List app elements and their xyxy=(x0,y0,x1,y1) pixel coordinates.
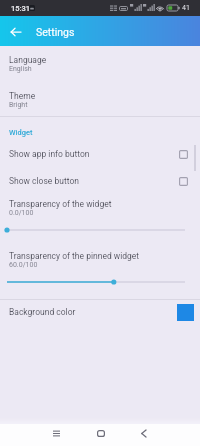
staticText: Transparency of the pinned widget xyxy=(9,251,140,261)
staticText: 60.0/100 xyxy=(9,261,38,269)
staticText: Transparency of the widget xyxy=(9,199,112,209)
staticText: Background color xyxy=(9,307,177,317)
staticText: Settings xyxy=(36,26,75,38)
staticText: 0.0/100 xyxy=(9,209,34,217)
button[interactable]: Back xyxy=(0,17,32,47)
button[interactable]: Transparency of the widget xyxy=(0,197,200,241)
staticText: Theme xyxy=(9,91,36,101)
button[interactable]: Back xyxy=(134,424,153,443)
button[interactable]: Recent apps xyxy=(47,424,66,443)
staticText: English xyxy=(9,65,32,73)
button[interactable]: Show app info button xyxy=(0,143,200,165)
staticText: 15:31 xyxy=(11,4,31,13)
staticText: 41 xyxy=(182,4,190,12)
button[interactable]: Background color xyxy=(0,299,200,325)
button[interactable]: Language xyxy=(0,52,200,82)
button[interactable]: Theme xyxy=(0,88,200,118)
button[interactable]: Recent apps xyxy=(48,424,200,446)
staticText: Widget xyxy=(9,128,33,137)
staticText: Bright xyxy=(9,101,28,109)
button[interactable]: Show close button xyxy=(0,170,200,192)
staticText: Language xyxy=(9,55,47,65)
staticText: Show app info button xyxy=(9,149,179,159)
button[interactable]: Home xyxy=(91,424,110,443)
button[interactable]: Transparency of the pinned widget xyxy=(0,249,200,293)
staticText: Show close button xyxy=(9,176,179,186)
